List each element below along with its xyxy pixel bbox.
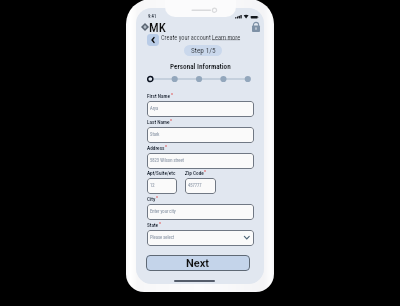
staticText: Step 1/5 [191, 46, 216, 55]
staticText: State [147, 222, 159, 228]
button[interactable]: Next [146, 255, 250, 271]
button[interactable]: 457777 [185, 178, 216, 194]
staticText: First Name [147, 93, 171, 99]
staticText: 12 [150, 183, 155, 188]
staticText: Enter your city [150, 209, 176, 214]
staticText: Next [186, 257, 210, 270]
button[interactable]: Stark [147, 127, 254, 143]
button[interactable]: Back [147, 34, 159, 46]
staticText: City [147, 196, 156, 202]
staticText: 5823 Wilson street [150, 158, 184, 163]
staticText: Personal Information [170, 62, 231, 70]
staticText: Apt/Suite/etc [147, 170, 176, 176]
button[interactable]: Learn more [212, 34, 241, 41]
staticText: Last Name [147, 119, 170, 125]
button[interactable]: 12 [147, 178, 177, 194]
button[interactable]: Please select [147, 230, 254, 246]
staticText: 457777 [188, 183, 202, 188]
staticText: Address [147, 145, 165, 151]
staticText: MK [149, 20, 166, 35]
button[interactable]: Arya [147, 101, 254, 117]
button[interactable]: Step 1/5 [184, 45, 222, 56]
button[interactable]: Enter your city [147, 204, 254, 220]
button[interactable]: Secure [250, 21, 261, 32]
staticText: Please select [150, 235, 175, 240]
staticText: Arya [150, 106, 159, 111]
button[interactable]: 5823 Wilson street [147, 153, 254, 169]
staticText: 9:41 [148, 14, 157, 19]
staticText: Zip Code [185, 170, 204, 176]
staticText: Learn more [212, 34, 241, 41]
staticText: Stark [150, 132, 160, 137]
staticText: Create your account [161, 34, 211, 41]
